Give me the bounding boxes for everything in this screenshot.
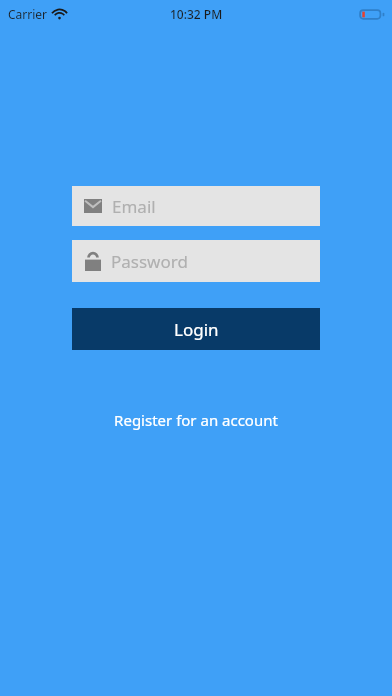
button[interactable]: Register for an account (0, 405, 392, 435)
staticText: Carrier (8, 6, 48, 22)
button[interactable]: Password (72, 240, 320, 282)
staticText: Email (112, 195, 156, 218)
staticText: Login (174, 318, 219, 341)
staticText: Register for an account (114, 410, 278, 430)
button[interactable]: Login (72, 308, 320, 350)
staticText: Password (111, 250, 188, 273)
staticText: 10:32 PM (170, 6, 223, 22)
button[interactable]: Email (72, 186, 320, 226)
